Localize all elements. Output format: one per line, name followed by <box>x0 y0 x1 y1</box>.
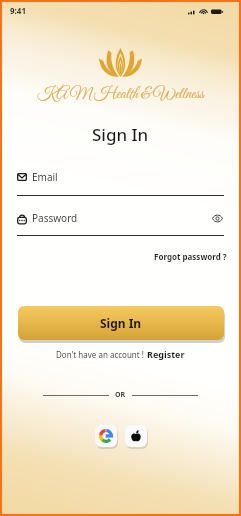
staticText: Sign In <box>100 315 142 331</box>
button[interactable]: Sign In <box>18 306 224 340</box>
button[interactable]: Forgot password ? <box>154 251 239 262</box>
staticText: Don't have an account ! <box>56 349 144 360</box>
staticText: KAM Health & Wellness <box>37 84 204 104</box>
staticText: Password <box>32 211 78 225</box>
button[interactable]: Sign in with Apple <box>125 425 147 447</box>
staticText: 9:41 <box>10 5 26 16</box>
staticText: Sign In <box>92 123 149 146</box>
staticText: Email <box>32 170 58 184</box>
button[interactable]: Sign in with Google <box>95 425 117 447</box>
staticText: OR <box>115 390 126 400</box>
button[interactable]: Show password <box>210 211 224 225</box>
button[interactable]: Register <box>147 348 185 360</box>
